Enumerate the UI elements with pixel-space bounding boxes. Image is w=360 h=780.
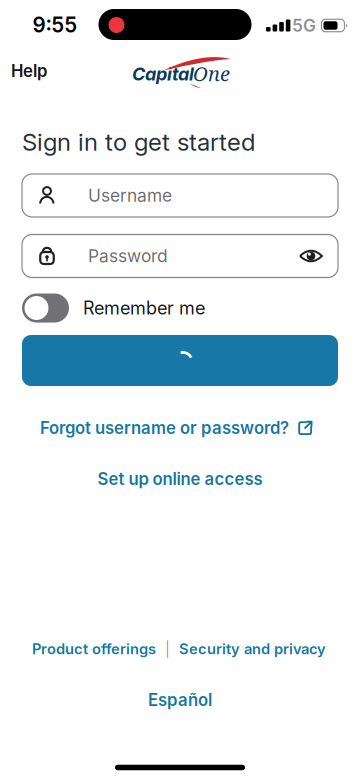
button[interactable]: Show password (297, 243, 325, 269)
staticText: 5G (292, 15, 316, 36)
button[interactable]: Set up online access (97, 469, 262, 489)
staticText: Security and privacy (179, 640, 326, 658)
button[interactable]: Password (22, 234, 338, 277)
button[interactable]: Sign In (22, 335, 338, 386)
button[interactable]: Forgot username or password? (40, 418, 314, 438)
staticText: Help (11, 61, 47, 81)
staticText: Capital (132, 63, 194, 85)
staticText: Remember me (83, 297, 205, 319)
staticText: Español (148, 690, 212, 710)
button[interactable]: Product offerings (32, 640, 156, 658)
button[interactable]: Security and privacy (179, 640, 326, 658)
staticText: Product offerings (32, 640, 156, 658)
staticText: Password (88, 245, 168, 266)
staticText: One (193, 60, 230, 87)
staticText: 9:55 (32, 12, 77, 37)
staticText: Sign in to get started (22, 127, 255, 156)
button[interactable]: Help (11, 61, 47, 81)
staticText: Set up online access (97, 469, 262, 489)
button[interactable]: Español (148, 690, 212, 710)
staticText: Forgot username or password? (40, 418, 289, 438)
button[interactable]: Username (22, 174, 338, 217)
button[interactable]: Remember me (22, 293, 69, 322)
staticText: Username (88, 185, 172, 206)
staticText: | (165, 640, 170, 658)
